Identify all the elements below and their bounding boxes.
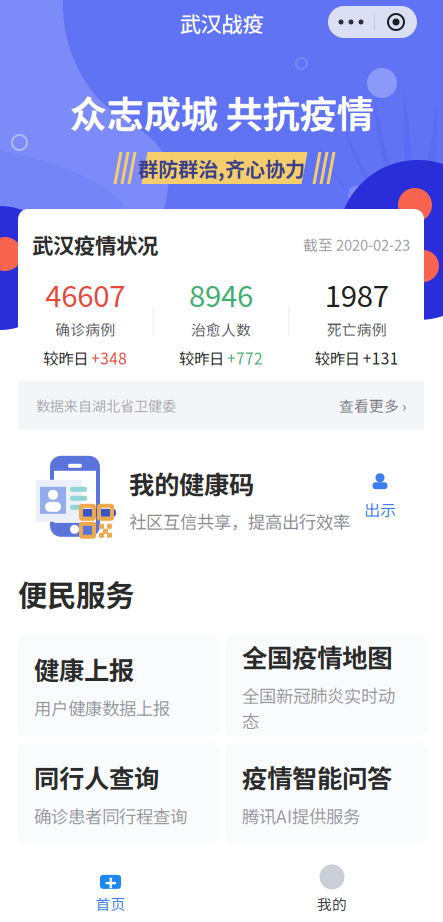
staticText: 较昨日 bbox=[43, 347, 91, 369]
staticText: 1987 bbox=[325, 273, 389, 315]
staticText: 数据来自湖北省卫健委 bbox=[36, 395, 176, 415]
staticText: 较昨日 bbox=[315, 347, 363, 369]
button[interactable]: 我的健康码 bbox=[18, 430, 424, 543]
staticText: +772 bbox=[227, 347, 263, 369]
staticText: 出示 bbox=[364, 498, 396, 521]
staticText: 我的 bbox=[317, 893, 347, 914]
button[interactable]: 同行人查询 bbox=[18, 742, 219, 844]
button[interactable]: 我的 bbox=[221, 858, 443, 920]
staticText: 全国新冠肺炎实时动态 bbox=[242, 683, 395, 733]
staticText: 武汉疫情状况 bbox=[32, 229, 158, 260]
staticText: 治愈人数 bbox=[191, 318, 251, 340]
staticText: 群防群治,齐心协力 bbox=[138, 153, 305, 182]
staticText: 较昨日 bbox=[179, 347, 227, 369]
staticText: 全国疫情地图 bbox=[242, 638, 392, 675]
staticText: 确诊病例 bbox=[55, 318, 115, 340]
staticText: 腾讯AI提供服务 bbox=[242, 803, 360, 828]
staticText: 死亡病例 bbox=[327, 318, 387, 340]
staticText: 众志成城 共抗疫情 bbox=[69, 85, 373, 139]
button[interactable]: 疫情智能问答 bbox=[226, 742, 427, 844]
staticText: 46607 bbox=[45, 273, 125, 315]
staticText: 便民服务 bbox=[18, 572, 134, 614]
staticText: 首页 bbox=[95, 893, 125, 914]
button[interactable]: 健康上报 bbox=[18, 634, 219, 736]
staticText: 我的健康码 bbox=[129, 465, 254, 502]
staticText: 社区互信共享，提高出行效率 bbox=[129, 509, 350, 534]
staticText: +348 bbox=[91, 347, 127, 369]
staticText: 疫情智能问答 bbox=[242, 759, 392, 795]
staticText: + bbox=[104, 868, 116, 896]
staticText: 同行人查询 bbox=[34, 759, 159, 795]
button[interactable]: 全国疫情地图 bbox=[226, 634, 427, 736]
staticText: 8946 bbox=[189, 273, 253, 315]
button[interactable]: 数据来自湖北省卫健委 bbox=[18, 381, 424, 430]
button[interactable]: + bbox=[0, 858, 221, 920]
staticText: 截至 2020-02-23 bbox=[303, 234, 410, 255]
staticText: 武汉战疫 bbox=[179, 8, 263, 38]
staticText: 健康上报 bbox=[34, 651, 134, 687]
staticText: +131 bbox=[363, 347, 399, 369]
staticText: 查看更多 › bbox=[339, 395, 406, 416]
staticText: 确诊患者同行程查询 bbox=[34, 803, 187, 828]
button[interactable]: Mini program menu bbox=[328, 6, 417, 38]
staticText: 用户健康数据上报 bbox=[34, 695, 170, 720]
